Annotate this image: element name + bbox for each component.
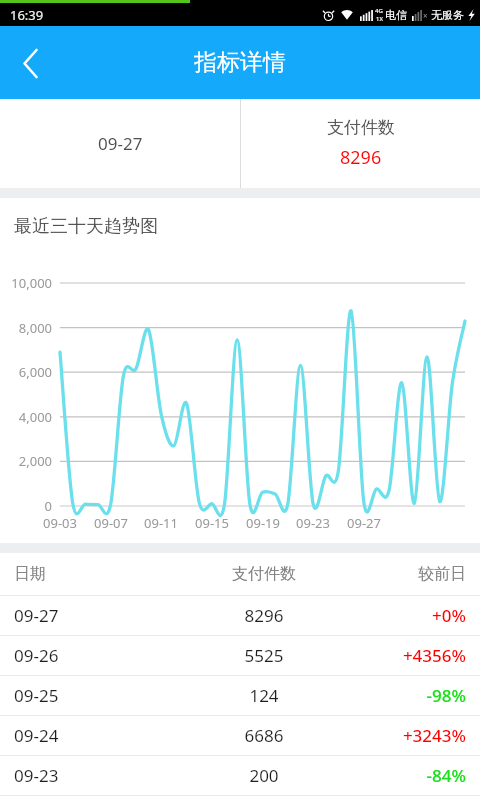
staticText: 09-23 — [283, 514, 343, 532]
button[interactable]: Back — [0, 33, 60, 93]
staticText: 最近三十天趋势图 — [14, 215, 158, 238]
staticText: 16:39 — [10, 6, 44, 24]
staticText: 09-27 — [98, 132, 143, 155]
button[interactable]: 09-26 — [0, 636, 480, 675]
staticText: 200 — [184, 764, 344, 787]
staticText: 1X — [376, 15, 383, 23]
staticText: 指标详情 — [194, 48, 286, 77]
staticText: 0 — [0, 497, 52, 515]
staticText: 无服务 — [431, 8, 464, 22]
staticText: 较前日 — [344, 564, 466, 584]
staticText: 支付件数 — [184, 564, 344, 584]
button[interactable]: 支付件数 — [241, 99, 480, 188]
staticText: 电信 — [385, 8, 407, 22]
staticText: 5525 — [184, 644, 344, 667]
staticText: 8296 — [340, 145, 382, 170]
staticText: 8296 — [184, 604, 344, 627]
staticText: × — [423, 10, 428, 21]
button[interactable]: 09-24 — [0, 716, 480, 755]
staticText: +4356% — [344, 644, 466, 667]
staticText: 6686 — [184, 724, 344, 747]
staticText: 09-15 — [182, 514, 242, 532]
button[interactable]: 09-23 — [0, 756, 480, 795]
staticText: 6,000 — [0, 363, 52, 381]
staticText: 09-27 — [14, 604, 184, 627]
staticText: 09-07 — [81, 514, 141, 532]
staticText: 8,000 — [0, 319, 52, 337]
staticText: 09-24 — [14, 724, 184, 747]
button[interactable]: 09-27 — [0, 99, 240, 188]
staticText: 124 — [184, 684, 344, 707]
staticText: 2,000 — [0, 452, 52, 470]
staticText: 日期 — [14, 564, 184, 584]
staticText: 09-25 — [14, 684, 184, 707]
staticText: -84% — [344, 764, 466, 787]
staticText: 09-03 — [30, 514, 90, 532]
staticText: 09-11 — [131, 514, 191, 532]
button[interactable]: 09-27 — [0, 596, 480, 635]
staticText: 4G — [375, 7, 383, 15]
staticText: -98% — [344, 684, 466, 707]
staticText: 09-27 — [334, 514, 394, 532]
staticText: +3243% — [344, 724, 466, 747]
staticText: 4,000 — [0, 408, 52, 426]
button[interactable]: 09-25 — [0, 676, 480, 715]
staticText: 支付件数 — [327, 117, 395, 138]
staticText: +0% — [344, 604, 466, 627]
staticText: 09-26 — [14, 644, 184, 667]
staticText: 09-23 — [14, 764, 184, 787]
staticText: 10,000 — [0, 274, 52, 292]
staticText: 09-19 — [233, 514, 293, 532]
